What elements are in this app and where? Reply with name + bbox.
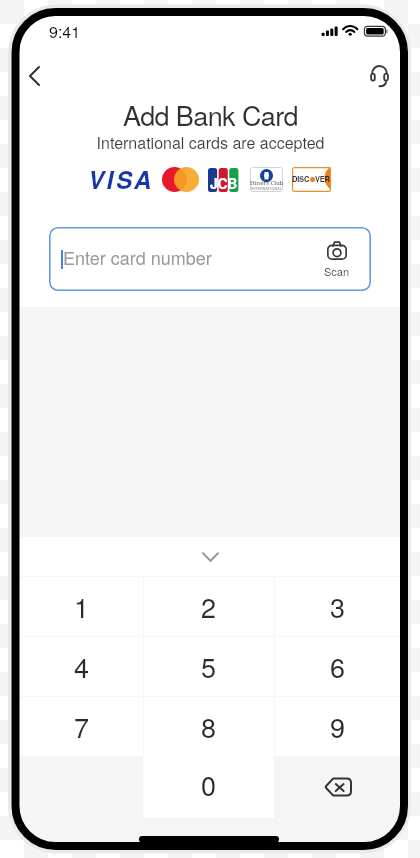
staticText: VISA [88, 162, 154, 196]
button[interactable]: Backspace [274, 756, 401, 818]
staticText: 1 [74, 587, 90, 626]
button[interactable]: Enter card number [49, 227, 371, 291]
button[interactable]: Back [20, 56, 54, 96]
button[interactable] [20, 756, 143, 818]
staticText: DISC [292, 174, 310, 185]
button[interactable]: 0 [143, 756, 274, 818]
staticText: Diners Club [250, 179, 283, 187]
staticText: 2 [201, 587, 217, 626]
button[interactable]: 3 [274, 576, 401, 636]
staticText: INTERNATIONAL [251, 186, 282, 191]
staticText: International cards are accepted [20, 131, 401, 154]
staticText: 7 [74, 707, 90, 746]
button[interactable]: 4 [20, 636, 143, 696]
button[interactable]: Scan card [313, 241, 361, 279]
staticText: 5 [201, 647, 217, 686]
staticText: 6 [330, 647, 346, 686]
button[interactable]: 9 [274, 696, 401, 756]
staticText: 9 [330, 707, 346, 746]
staticText: Add Bank Card [20, 95, 401, 134]
staticText: 9:41 [49, 20, 81, 43]
staticText: 4 [74, 647, 90, 686]
staticText: 8 [201, 707, 217, 746]
staticText: Enter card number [63, 244, 212, 270]
button[interactable]: 5 [143, 636, 274, 696]
button[interactable]: 2 [143, 576, 274, 636]
button[interactable]: 1 [20, 576, 143, 636]
button[interactable]: Customer support [358, 55, 400, 97]
staticText: 0 [201, 765, 217, 804]
button[interactable]: 6 [274, 636, 401, 696]
button[interactable]: 7 [20, 696, 143, 756]
staticText: JCB [210, 173, 238, 193]
button[interactable]: 8 [143, 696, 274, 756]
staticText: VER [315, 174, 330, 185]
staticText: 3 [330, 587, 346, 626]
staticText: Scan [324, 263, 350, 279]
button[interactable]: Hide keyboard [20, 537, 401, 576]
